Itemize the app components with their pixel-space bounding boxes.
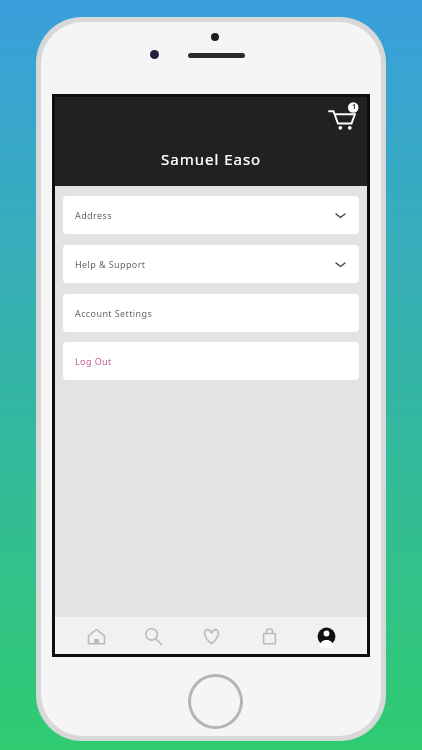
button[interactable]: Search xyxy=(136,619,170,653)
staticText: Account Settings xyxy=(75,307,153,319)
other: Home button xyxy=(188,674,243,729)
staticText: Samuel Easo xyxy=(161,149,262,169)
staticText: Address xyxy=(75,209,112,221)
button[interactable]: Favorites xyxy=(194,619,228,653)
button[interactable]: Cart, 1 item xyxy=(325,101,359,135)
button[interactable]: Address xyxy=(63,196,359,234)
staticText: Help & Support xyxy=(75,258,146,270)
staticText: 1 xyxy=(352,102,357,112)
button[interactable]: Profile xyxy=(309,619,343,653)
button[interactable]: Bag xyxy=(252,619,286,653)
button[interactable]: Account Settings xyxy=(63,294,359,332)
button[interactable]: Help & Support xyxy=(63,245,359,283)
staticText: Log Out xyxy=(75,355,112,367)
button[interactable]: Home xyxy=(79,619,113,653)
button[interactable]: Log Out xyxy=(63,342,359,380)
